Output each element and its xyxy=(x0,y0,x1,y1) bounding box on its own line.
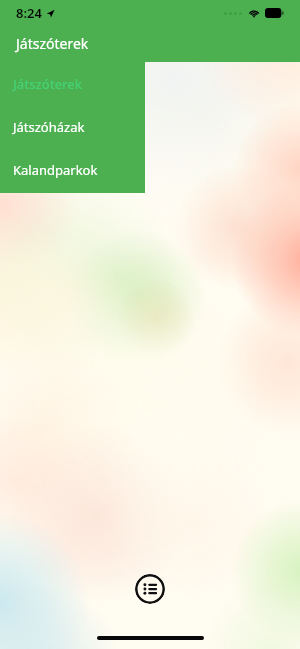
button[interactable]: Lista xyxy=(135,574,165,604)
button[interactable]: Kalandparkok xyxy=(0,148,145,191)
button[interactable]: Játszóterek xyxy=(0,62,145,105)
staticText: Kalandparkok xyxy=(13,161,98,179)
button[interactable]: Játszóházak xyxy=(0,105,145,148)
staticText: Játszóterek xyxy=(13,75,83,93)
staticText: 8:24 xyxy=(16,4,42,22)
staticText: Játszóházak xyxy=(13,118,85,136)
staticText: Játszóterek xyxy=(16,34,89,53)
